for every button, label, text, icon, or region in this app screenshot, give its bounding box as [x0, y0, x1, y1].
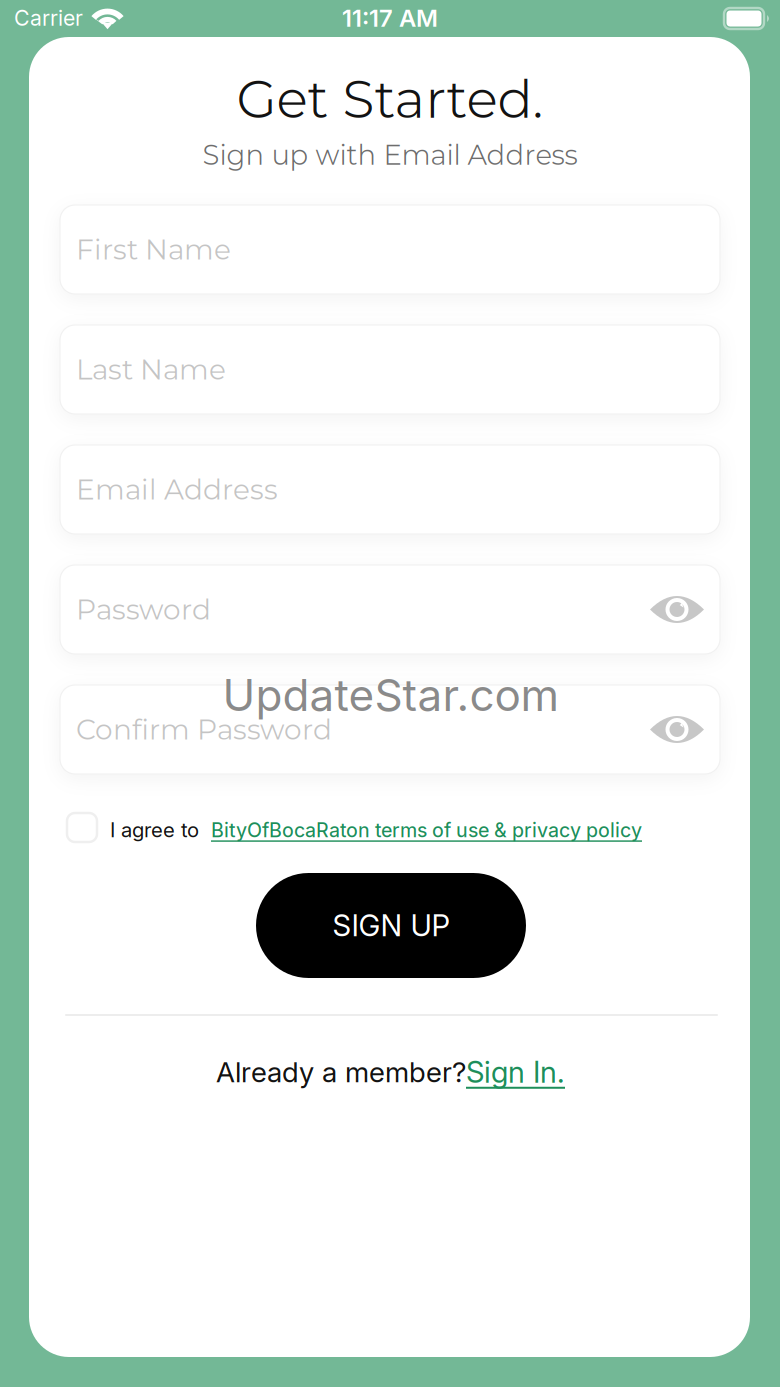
- staticText: Sign up with Email Address: [202, 138, 577, 172]
- button[interactable]: Password: [60, 565, 720, 654]
- staticText: Last Name: [76, 352, 226, 386]
- button[interactable]: First Name: [60, 205, 720, 294]
- staticText: I agree to: [110, 818, 199, 842]
- staticText: UpdateStar.com: [222, 668, 559, 722]
- button[interactable]: Last Name: [60, 325, 720, 414]
- staticText: Already a member?: [216, 1055, 466, 1089]
- button[interactable]: Sign In.: [466, 1054, 565, 1090]
- button[interactable]: SIGN UP: [256, 873, 526, 978]
- button[interactable]: Email Address: [60, 445, 720, 534]
- button[interactable]: Agree to terms and privacy policy: [67, 813, 97, 842]
- staticText: BityOfBocaRaton terms of use & privacy p…: [211, 818, 642, 842]
- staticText: Password: [76, 592, 211, 626]
- button[interactable]: Confirm Password: [60, 685, 720, 774]
- staticText: 11:17 AM: [342, 3, 438, 32]
- staticText: Sign In.: [466, 1054, 565, 1090]
- button[interactable]: BityOfBocaRaton terms of use & privacy p…: [211, 818, 642, 842]
- staticText: SIGN UP: [332, 908, 449, 943]
- staticText: Carrier: [14, 5, 83, 31]
- staticText: Get Started.: [236, 67, 543, 131]
- staticText: Email Address: [76, 472, 278, 506]
- staticText: First Name: [76, 232, 231, 266]
- staticText: Confirm Password: [76, 712, 332, 746]
